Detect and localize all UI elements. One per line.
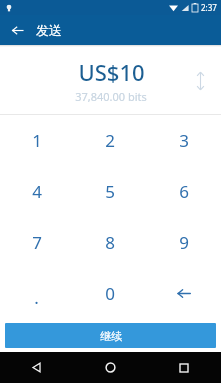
staticText: 0 — [105, 282, 115, 305]
button[interactable]: 0 — [73, 268, 147, 319]
staticText: 发送 — [36, 22, 62, 38]
staticText: 8 — [105, 231, 115, 254]
staticText: US$10 — [78, 57, 145, 87]
staticText: 4 — [32, 180, 42, 203]
button[interactable]: Back — [0, 352, 73, 383]
staticText: 6 — [179, 180, 189, 203]
staticText: 7 — [32, 231, 42, 254]
button[interactable]: 1 — [0, 115, 73, 166]
staticText: 2 — [105, 129, 115, 152]
staticText: . — [34, 286, 39, 309]
button[interactable]: . — [0, 268, 73, 319]
staticText: 3 — [179, 129, 189, 152]
button[interactable]: 2 — [73, 115, 147, 166]
staticText: 2:37 — [201, 2, 217, 13]
button[interactable]: Backspace — [147, 268, 221, 319]
button[interactable]: Home — [73, 352, 147, 383]
staticText: 1 — [32, 129, 42, 152]
button[interactable]: 4 — [0, 166, 73, 217]
staticText: 9 — [179, 231, 189, 254]
button[interactable]: 继续 — [5, 323, 216, 348]
button[interactable]: Swap currency — [185, 66, 215, 96]
button[interactable]: 8 — [73, 217, 147, 268]
button[interactable]: Back — [4, 17, 30, 43]
button[interactable]: 7 — [0, 217, 73, 268]
button[interactable]: 5 — [73, 166, 147, 217]
staticText: 继续 — [100, 329, 122, 343]
button[interactable]: 3 — [147, 115, 221, 166]
button[interactable]: Recent apps — [147, 352, 221, 383]
staticText: 5 — [105, 180, 115, 203]
button[interactable]: 9 — [147, 217, 221, 268]
button[interactable]: 6 — [147, 166, 221, 217]
staticText: 37,840.00 bits — [75, 89, 147, 104]
